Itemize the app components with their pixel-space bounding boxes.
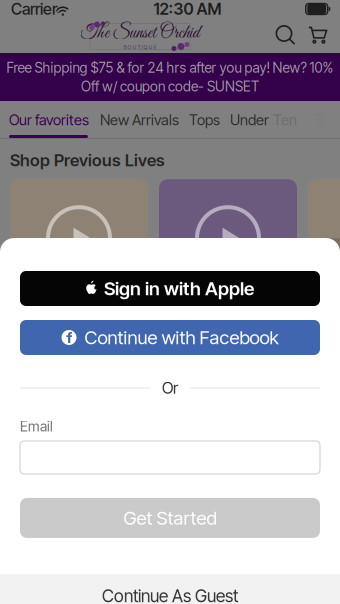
staticText: Continue As Guest — [102, 585, 238, 604]
staticText: 12:30 AM — [153, 0, 221, 19]
staticText: Free Shipping $75 & for 24 hrs after you… — [6, 59, 333, 76]
staticText: Ten — [273, 111, 297, 129]
staticText: New Arrivals — [100, 111, 179, 129]
staticText: Get Started — [123, 507, 216, 529]
button[interactable]: Get Started — [20, 498, 320, 538]
button[interactable]: Under — [225, 101, 302, 138]
staticText: The Sunset Orchid — [80, 22, 199, 45]
button[interactable]: Cart — [300, 20, 329, 50]
button[interactable]: Our favorites — [0, 101, 95, 138]
staticText: Sign in with Apple — [104, 277, 254, 300]
staticText: Off w/ coupon code- SUNSET — [81, 78, 259, 95]
button[interactable]: Sign in with Apple — [20, 271, 320, 306]
staticText: Tops — [189, 111, 220, 129]
staticText: B O U T I Q U E — [123, 44, 156, 50]
staticText: Continue with Facebook — [84, 326, 278, 349]
staticText: Or — [162, 378, 178, 398]
button[interactable]: Tops — [184, 101, 225, 138]
staticText: Shop Previous Lives — [10, 150, 165, 170]
button[interactable]: Continue with Facebook — [20, 320, 320, 355]
staticText: Carrier — [11, 0, 57, 19]
button[interactable]: New Arrivals — [95, 101, 184, 138]
staticText: Under — [230, 111, 269, 129]
staticText: Our favorites — [9, 111, 89, 129]
button[interactable]: Search — [272, 19, 300, 51]
button[interactable]: Continue As Guest — [0, 574, 340, 604]
staticText: Email — [20, 418, 53, 435]
